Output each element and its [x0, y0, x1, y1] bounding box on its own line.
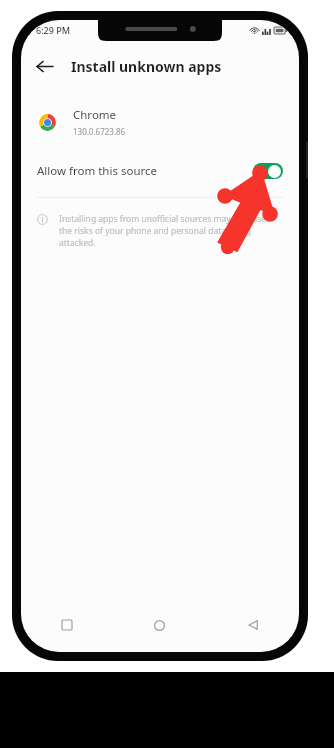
- button[interactable]: Allow from this source: [21, 156, 299, 186]
- staticText: 6:29 PM: [36, 24, 70, 36]
- staticText: Install unknown apps: [71, 57, 222, 76]
- button[interactable]: Chrome: [21, 105, 299, 139]
- staticText: Chrome: [73, 107, 117, 123]
- button[interactable]: Back: [206, 608, 299, 642]
- button[interactable]: Allow from this source toggle: [253, 163, 283, 179]
- staticText: 130.0.6723.86: [73, 126, 126, 137]
- staticText: Allow from this source: [37, 163, 158, 179]
- button[interactable]: Recent apps: [21, 608, 113, 642]
- button[interactable]: Back: [27, 49, 61, 83]
- button[interactable]: Home: [113, 608, 206, 642]
- staticText: Installing apps from unofficial sources …: [59, 213, 281, 249]
